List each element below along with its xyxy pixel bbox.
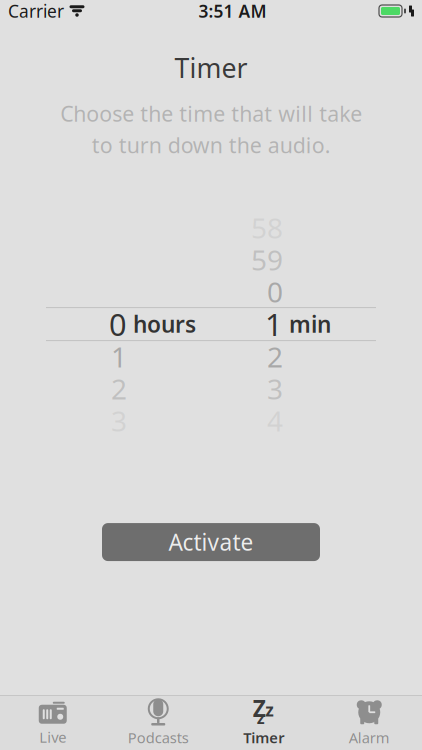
button[interactable]: Activate (102, 523, 320, 561)
staticText: 1 (111, 338, 127, 375)
staticText: 3 (267, 370, 283, 407)
staticText: Alarm (349, 728, 390, 747)
staticText: 1 (265, 304, 283, 344)
staticText: 4 (267, 402, 283, 439)
staticText: 2 (111, 370, 127, 407)
button[interactable]: Live (0, 697, 105, 749)
staticText: Activate (168, 527, 253, 557)
staticText: 58 (251, 209, 283, 246)
staticText: 3:51 AM (198, 0, 266, 22)
staticText: 59 (251, 241, 283, 278)
button[interactable]: Alarm (316, 697, 422, 749)
staticText: Z (253, 693, 266, 723)
staticText: Choose the time that will take to turn d… (60, 99, 362, 159)
button[interactable]: Podcasts (105, 697, 211, 749)
staticText: hours (133, 309, 196, 339)
staticText: Podcasts (128, 728, 189, 747)
staticText: min (289, 309, 331, 339)
staticText: Live (39, 727, 66, 747)
button[interactable]: Z (211, 697, 316, 749)
staticText: Timer (174, 50, 247, 85)
staticText: z (265, 698, 274, 721)
staticText: 3 (111, 402, 127, 439)
staticText: Timer (243, 728, 284, 747)
staticText: 0 (109, 304, 127, 344)
staticText: 2 (267, 338, 283, 375)
staticText: Carrier (8, 0, 64, 22)
staticText: 0 (267, 273, 283, 310)
staticText: z (257, 707, 265, 728)
